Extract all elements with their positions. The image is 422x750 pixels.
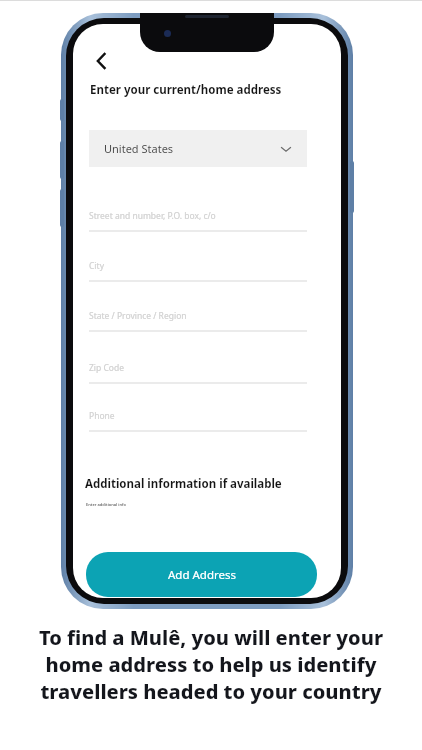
staticText: Zip Code xyxy=(89,362,125,374)
button[interactable]: Back xyxy=(85,44,119,78)
staticText: City xyxy=(89,260,104,272)
button[interactable]: United States xyxy=(89,130,307,167)
staticText: United States xyxy=(104,141,280,156)
staticText: Street and number, P.O. box, c/o xyxy=(89,210,216,222)
staticText: To find a Mulê, you will enter your xyxy=(18,624,404,651)
button[interactable]: Street and number, P.O. box, c/o xyxy=(89,210,307,232)
staticText: home address to help us identify xyxy=(18,651,404,678)
staticText: Enter additional info xyxy=(86,502,126,507)
button[interactable]: Zip Code xyxy=(89,362,307,384)
button[interactable]: Add Address xyxy=(86,552,317,597)
staticText: State / Province / Region xyxy=(89,310,187,322)
staticText: Enter your current/home address xyxy=(90,82,282,98)
staticText: Add Address xyxy=(168,567,236,583)
button[interactable]: State / Province / Region xyxy=(89,310,307,332)
staticText: Phone xyxy=(89,410,115,422)
staticText: Additional information if available xyxy=(85,476,282,492)
button[interactable]: Phone xyxy=(89,410,307,432)
staticText: travellers headed to your country xyxy=(18,678,404,705)
button[interactable]: City xyxy=(89,260,307,282)
